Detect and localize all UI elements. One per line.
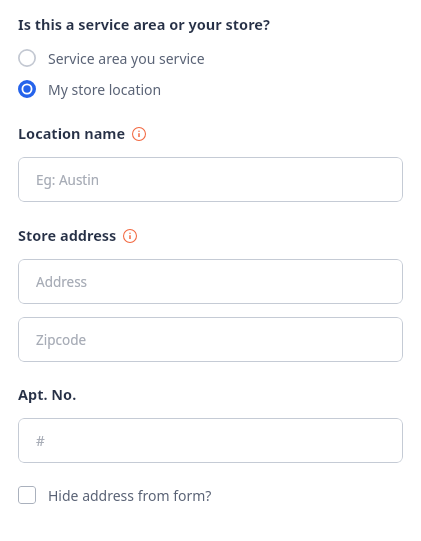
button[interactable]: Service area you service — [0, 45, 421, 71]
staticText: Hide address from form? — [48, 486, 212, 505]
staticText: Eg: Austin — [36, 171, 100, 189]
staticText: # — [36, 432, 45, 450]
button[interactable]: Eg: Austin — [18, 157, 403, 202]
other: More information — [123, 229, 137, 243]
button[interactable]: Zipcode — [18, 317, 403, 362]
staticText: Address — [36, 273, 88, 291]
staticText: Zipcode — [36, 331, 87, 349]
staticText: Store address — [18, 225, 117, 245]
staticText: Is this a service area or your store? — [18, 14, 270, 34]
button[interactable]: # — [18, 418, 403, 463]
staticText: Location name — [18, 123, 126, 143]
staticText: Apt. No. — [18, 384, 77, 404]
staticText: My store location — [48, 80, 162, 99]
button[interactable]: Hide address from form? — [0, 481, 421, 509]
button[interactable]: Address — [18, 259, 403, 304]
other: More information — [132, 127, 146, 141]
button[interactable]: My store location — [0, 76, 421, 102]
staticText: Service area you service — [48, 49, 205, 68]
